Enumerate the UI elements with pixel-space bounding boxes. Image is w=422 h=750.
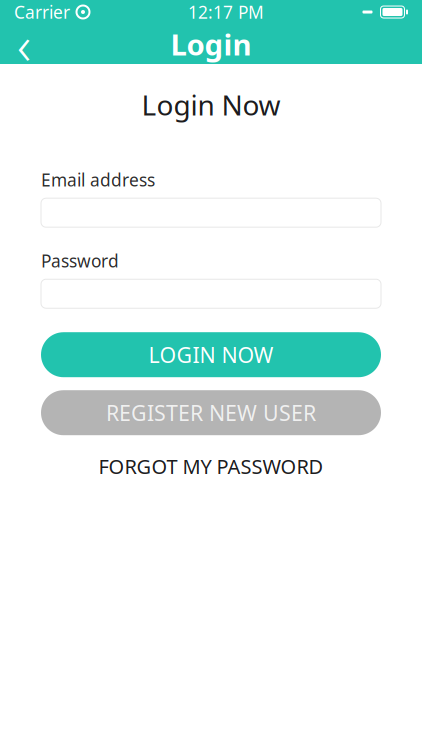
staticText: Email address bbox=[41, 168, 155, 191]
button[interactable]: Back bbox=[2, 24, 46, 64]
button[interactable]: REGISTER NEW USER bbox=[41, 390, 381, 435]
staticText: Carrier bbox=[14, 0, 70, 23]
staticText: FORGOT MY PASSWORD bbox=[98, 453, 323, 479]
staticText: Password bbox=[41, 249, 119, 272]
staticText: Login bbox=[170, 24, 251, 63]
staticText: LOGIN NOW bbox=[148, 341, 273, 369]
button[interactable]: LOGIN NOW bbox=[41, 332, 381, 377]
staticText: REGISTER NEW USER bbox=[106, 399, 316, 427]
staticText: ‹ bbox=[17, 9, 31, 79]
staticText: Login Now bbox=[141, 86, 280, 123]
button[interactable]: FORGOT MY PASSWORD bbox=[41, 451, 381, 481]
staticText: 12:17 PM bbox=[188, 0, 264, 23]
